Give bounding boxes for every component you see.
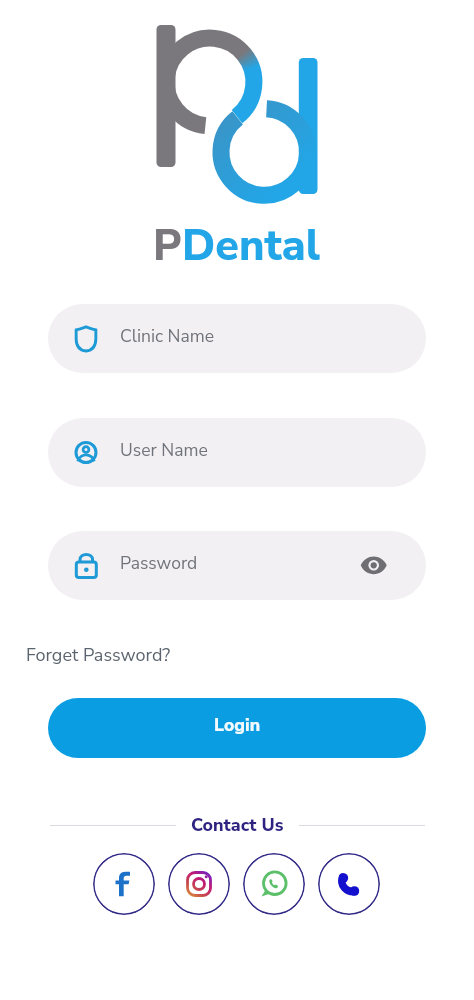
staticText: Dental — [182, 217, 321, 276]
button[interactable]: Instagram — [168, 853, 230, 915]
button[interactable]: Clinic Name — [48, 304, 426, 373]
button[interactable]: Phone call — [318, 853, 380, 915]
staticText: Password — [120, 551, 198, 575]
button[interactable]: Password — [48, 531, 426, 600]
staticText: Forget Password? — [26, 643, 171, 668]
button[interactable]: User Name — [48, 418, 426, 487]
staticText: Login — [214, 713, 261, 737]
button[interactable]: Login — [48, 698, 426, 758]
button[interactable]: Facebook — [93, 853, 155, 915]
staticText: User Name — [120, 438, 208, 462]
button[interactable]: Forget Password? — [18, 638, 179, 673]
staticText: P — [153, 217, 182, 276]
staticText: Contact Us — [191, 813, 284, 837]
staticText: Clinic Name — [120, 324, 215, 348]
button[interactable]: WhatsApp — [243, 853, 305, 915]
